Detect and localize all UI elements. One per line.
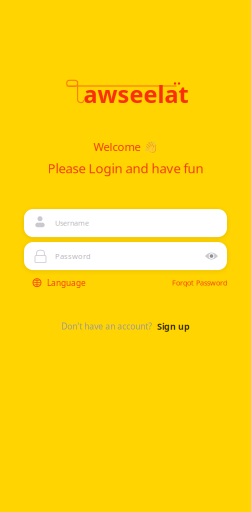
staticText: Password	[55, 251, 91, 261]
button[interactable]: Show password	[205, 251, 227, 261]
staticText: Language	[47, 277, 86, 288]
staticText: Sign up	[157, 320, 190, 332]
staticText: Welcome 👋	[93, 139, 157, 154]
staticText: awseelat	[83, 78, 188, 110]
button[interactable]: Language	[24, 277, 86, 288]
staticText: Forgot Password	[172, 278, 227, 288]
button[interactable]: Forgot Password	[172, 278, 227, 288]
staticText: Username	[55, 218, 89, 228]
staticText: Don't have an account?	[61, 320, 152, 332]
staticText: Please Login and have fun	[47, 159, 203, 177]
button[interactable]: Sign up	[157, 320, 190, 332]
